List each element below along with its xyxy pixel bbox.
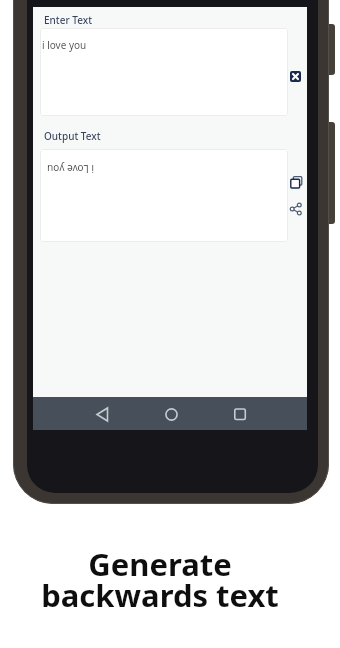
staticText: i love you [42, 38, 87, 52]
staticText: Generate backwards text [41, 543, 279, 616]
button[interactable] [157, 401, 184, 426]
button[interactable] [89, 401, 117, 426]
button[interactable] [40, 149, 288, 242]
staticText: i Love you [47, 162, 94, 176]
button[interactable] [290, 71, 301, 82]
button[interactable] [290, 176, 303, 189]
button[interactable] [40, 28, 288, 116]
button[interactable] [290, 203, 302, 215]
button[interactable] [226, 401, 254, 426]
staticText: Enter Text [44, 13, 92, 27]
staticText: Output Text [44, 129, 101, 143]
